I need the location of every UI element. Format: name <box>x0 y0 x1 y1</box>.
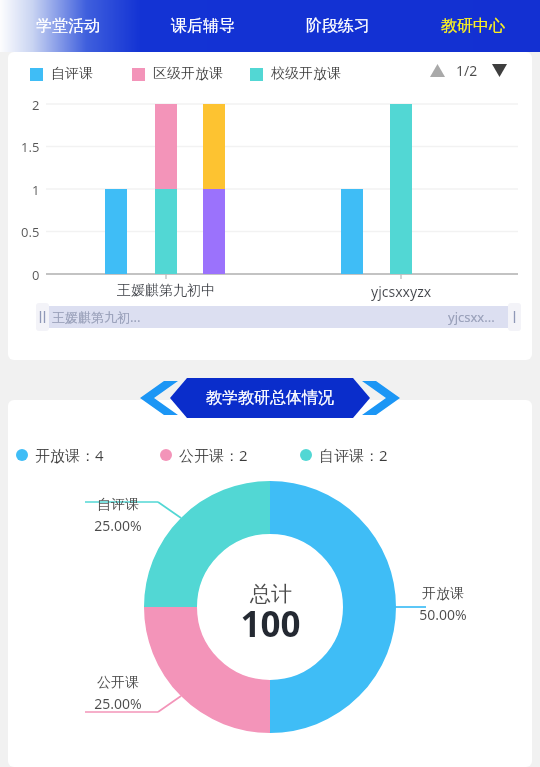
staticText: 自评课 <box>51 65 93 83</box>
button[interactable]: 开放课：4 <box>16 443 85 467</box>
staticText: 校级开放课 <box>271 65 341 83</box>
button[interactable]: Range start <box>36 303 49 331</box>
staticText: 教研中心 <box>441 16 505 36</box>
button[interactable]: 公开课：2 <box>160 443 229 467</box>
staticText: 100 <box>240 600 301 648</box>
button[interactable]: Range end <box>508 303 521 331</box>
staticText: 教学教研总体情况 <box>206 388 334 408</box>
staticText: 王媛麒第九初... <box>52 308 141 326</box>
staticText: 区级开放课 <box>153 65 223 83</box>
staticText: 自评课：2 <box>319 445 388 465</box>
button[interactable]: Data range slider <box>36 303 508 331</box>
button[interactable]: 阶段练习 <box>270 0 405 52</box>
staticText: yjcsxx... <box>448 308 495 326</box>
staticText: 开放课 <box>422 585 464 603</box>
button[interactable]: 学堂活动 <box>0 0 135 52</box>
staticText: 2 <box>32 96 40 114</box>
staticText: 1.5 <box>21 138 40 156</box>
staticText: 0 <box>32 266 40 284</box>
staticText: 自评课 <box>97 496 139 514</box>
staticText: 阶段练习 <box>306 16 370 36</box>
button[interactable]: 教学教研总体情况 <box>140 378 400 418</box>
staticText: 25.00% <box>94 694 142 713</box>
button[interactable]: Next page <box>486 58 512 82</box>
staticText: 1/2 <box>456 61 478 80</box>
staticText: 50.00% <box>419 605 467 624</box>
staticText: 1 <box>32 181 40 199</box>
staticText: yjcsxxyzx <box>371 282 432 301</box>
staticText: 总计 <box>250 581 292 607</box>
staticText: 公开课 <box>97 674 139 692</box>
staticText: 开放课：4 <box>35 445 104 465</box>
button[interactable]: 自评课：2 <box>300 443 369 467</box>
button[interactable]: 区级开放课 <box>132 64 202 84</box>
button[interactable]: 校级开放课 <box>250 64 320 84</box>
button[interactable]: 教研中心 <box>405 0 540 52</box>
button[interactable]: 自评课 <box>30 64 72 84</box>
staticText: 王媛麒第九初中 <box>117 282 215 300</box>
staticText: 0.5 <box>21 223 40 241</box>
staticText: 25.00% <box>94 516 142 535</box>
staticText: 公开课：2 <box>179 445 248 465</box>
button[interactable]: Previous page <box>424 58 450 82</box>
staticText: 课后辅导 <box>171 16 235 36</box>
button[interactable]: 课后辅导 <box>135 0 270 52</box>
staticText: 学堂活动 <box>36 16 100 36</box>
